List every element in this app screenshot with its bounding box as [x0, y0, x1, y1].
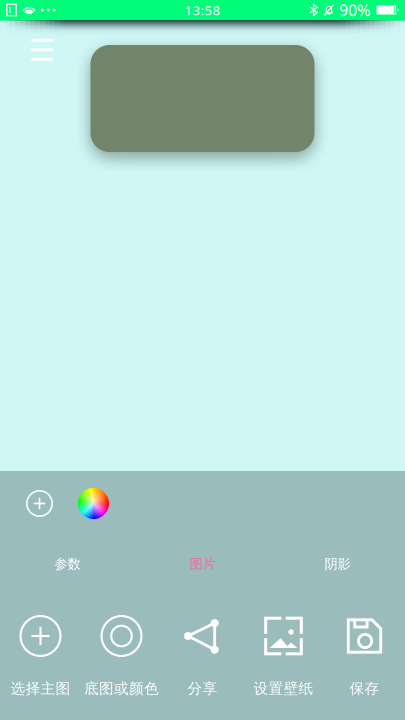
button[interactable]: Add layer — [20, 484, 59, 523]
staticText: 设置壁纸 — [253, 679, 313, 697]
staticText: 参数 — [54, 556, 80, 572]
button[interactable]: 保存 — [324, 615, 405, 705]
staticText: 13:58 — [184, 1, 220, 19]
button[interactable]: 图片 — [135, 554, 270, 574]
staticText: 保存 — [349, 679, 379, 697]
staticText: 阴影 — [324, 556, 350, 572]
staticText: 底图或颜色 — [84, 679, 159, 697]
button[interactable]: Menu — [23, 31, 61, 68]
button[interactable]: 分享 — [162, 615, 243, 705]
staticText: 图片 — [189, 556, 215, 572]
button[interactable]: 阴影 — [270, 554, 405, 574]
button[interactable]: 设置壁纸 — [243, 615, 324, 705]
staticText: 选择主图 — [10, 679, 70, 697]
button[interactable]: 参数 — [0, 554, 135, 574]
button[interactable]: 底图或颜色 — [81, 615, 162, 705]
staticText: 分享 — [187, 679, 217, 697]
staticText: 90% — [339, 0, 371, 21]
button[interactable]: 选择主图 — [0, 615, 81, 705]
button[interactable]: Pick colour — [74, 484, 113, 523]
